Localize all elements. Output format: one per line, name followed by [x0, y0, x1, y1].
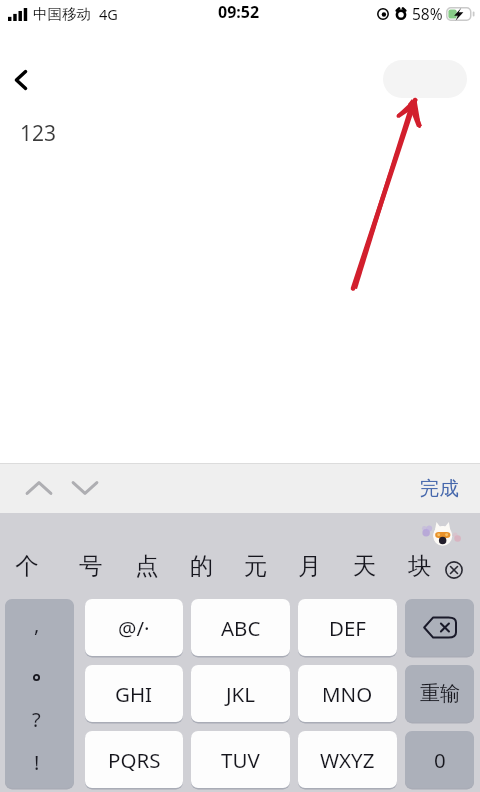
button[interactable]: 的: [176, 547, 228, 585]
staticText: 元: [244, 551, 268, 581]
button[interactable]: ABC: [191, 599, 290, 656]
button[interactable]: More: [383, 60, 467, 98]
staticText: 完成: [420, 476, 459, 501]
staticText: 中国移动: [33, 5, 91, 23]
staticText: JKL: [226, 680, 256, 708]
button[interactable]: JKL: [191, 665, 290, 722]
button[interactable]: MNO: [298, 665, 397, 722]
button[interactable]: TUV: [191, 731, 290, 788]
staticText: PQRS: [108, 746, 161, 774]
staticText: 点: [135, 551, 159, 581]
staticText: ABC: [221, 614, 261, 642]
staticText: TUV: [221, 746, 260, 774]
staticText: 天: [353, 551, 377, 581]
staticText: @/·: [118, 614, 150, 642]
staticText: MNO: [322, 680, 373, 708]
staticText: DEF: [329, 614, 367, 642]
button[interactable]: 天: [339, 547, 391, 585]
staticText: 09:52: [218, 1, 260, 23]
button[interactable]: 块: [394, 547, 446, 585]
button[interactable]: DEF: [298, 599, 397, 656]
button[interactable]: Backspace: [405, 599, 474, 656]
staticText: ,: [34, 611, 40, 638]
staticText: 月: [298, 551, 322, 581]
other: Backspace: [423, 616, 457, 639]
staticText: 4G: [99, 4, 118, 24]
staticText: 0: [434, 746, 446, 774]
button[interactable]: PQRS: [85, 731, 183, 788]
staticText: 重输: [420, 681, 460, 706]
button[interactable]: 个: [1, 547, 53, 585]
button[interactable]: 完成: [411, 471, 468, 506]
button[interactable]: 重输: [405, 665, 474, 722]
button[interactable]: ,: [5, 599, 74, 788]
staticText: WXYZ: [320, 746, 375, 774]
button[interactable]: Previous field: [21, 470, 57, 506]
staticText: 123: [20, 119, 57, 148]
button[interactable]: 号: [65, 547, 117, 585]
staticText: ?: [32, 706, 41, 733]
staticText: 个: [15, 551, 39, 581]
button[interactable]: Back: [2, 60, 42, 100]
button[interactable]: 元: [230, 547, 282, 585]
button[interactable]: 月: [284, 547, 336, 585]
staticText: GHI: [115, 680, 153, 708]
button[interactable]: 点: [121, 547, 173, 585]
button[interactable]: GHI: [85, 665, 183, 722]
staticText: 58%: [412, 3, 443, 24]
staticText: 块: [408, 551, 432, 581]
button[interactable]: Next field: [67, 470, 103, 506]
staticText: 号: [79, 551, 103, 581]
staticText: 的: [190, 551, 214, 581]
button[interactable]: WXYZ: [298, 731, 397, 788]
staticText: !: [34, 749, 40, 776]
button[interactable]: Close candidates: [435, 551, 473, 589]
button[interactable]: @/·: [85, 599, 183, 656]
button[interactable]: 0: [405, 731, 474, 788]
